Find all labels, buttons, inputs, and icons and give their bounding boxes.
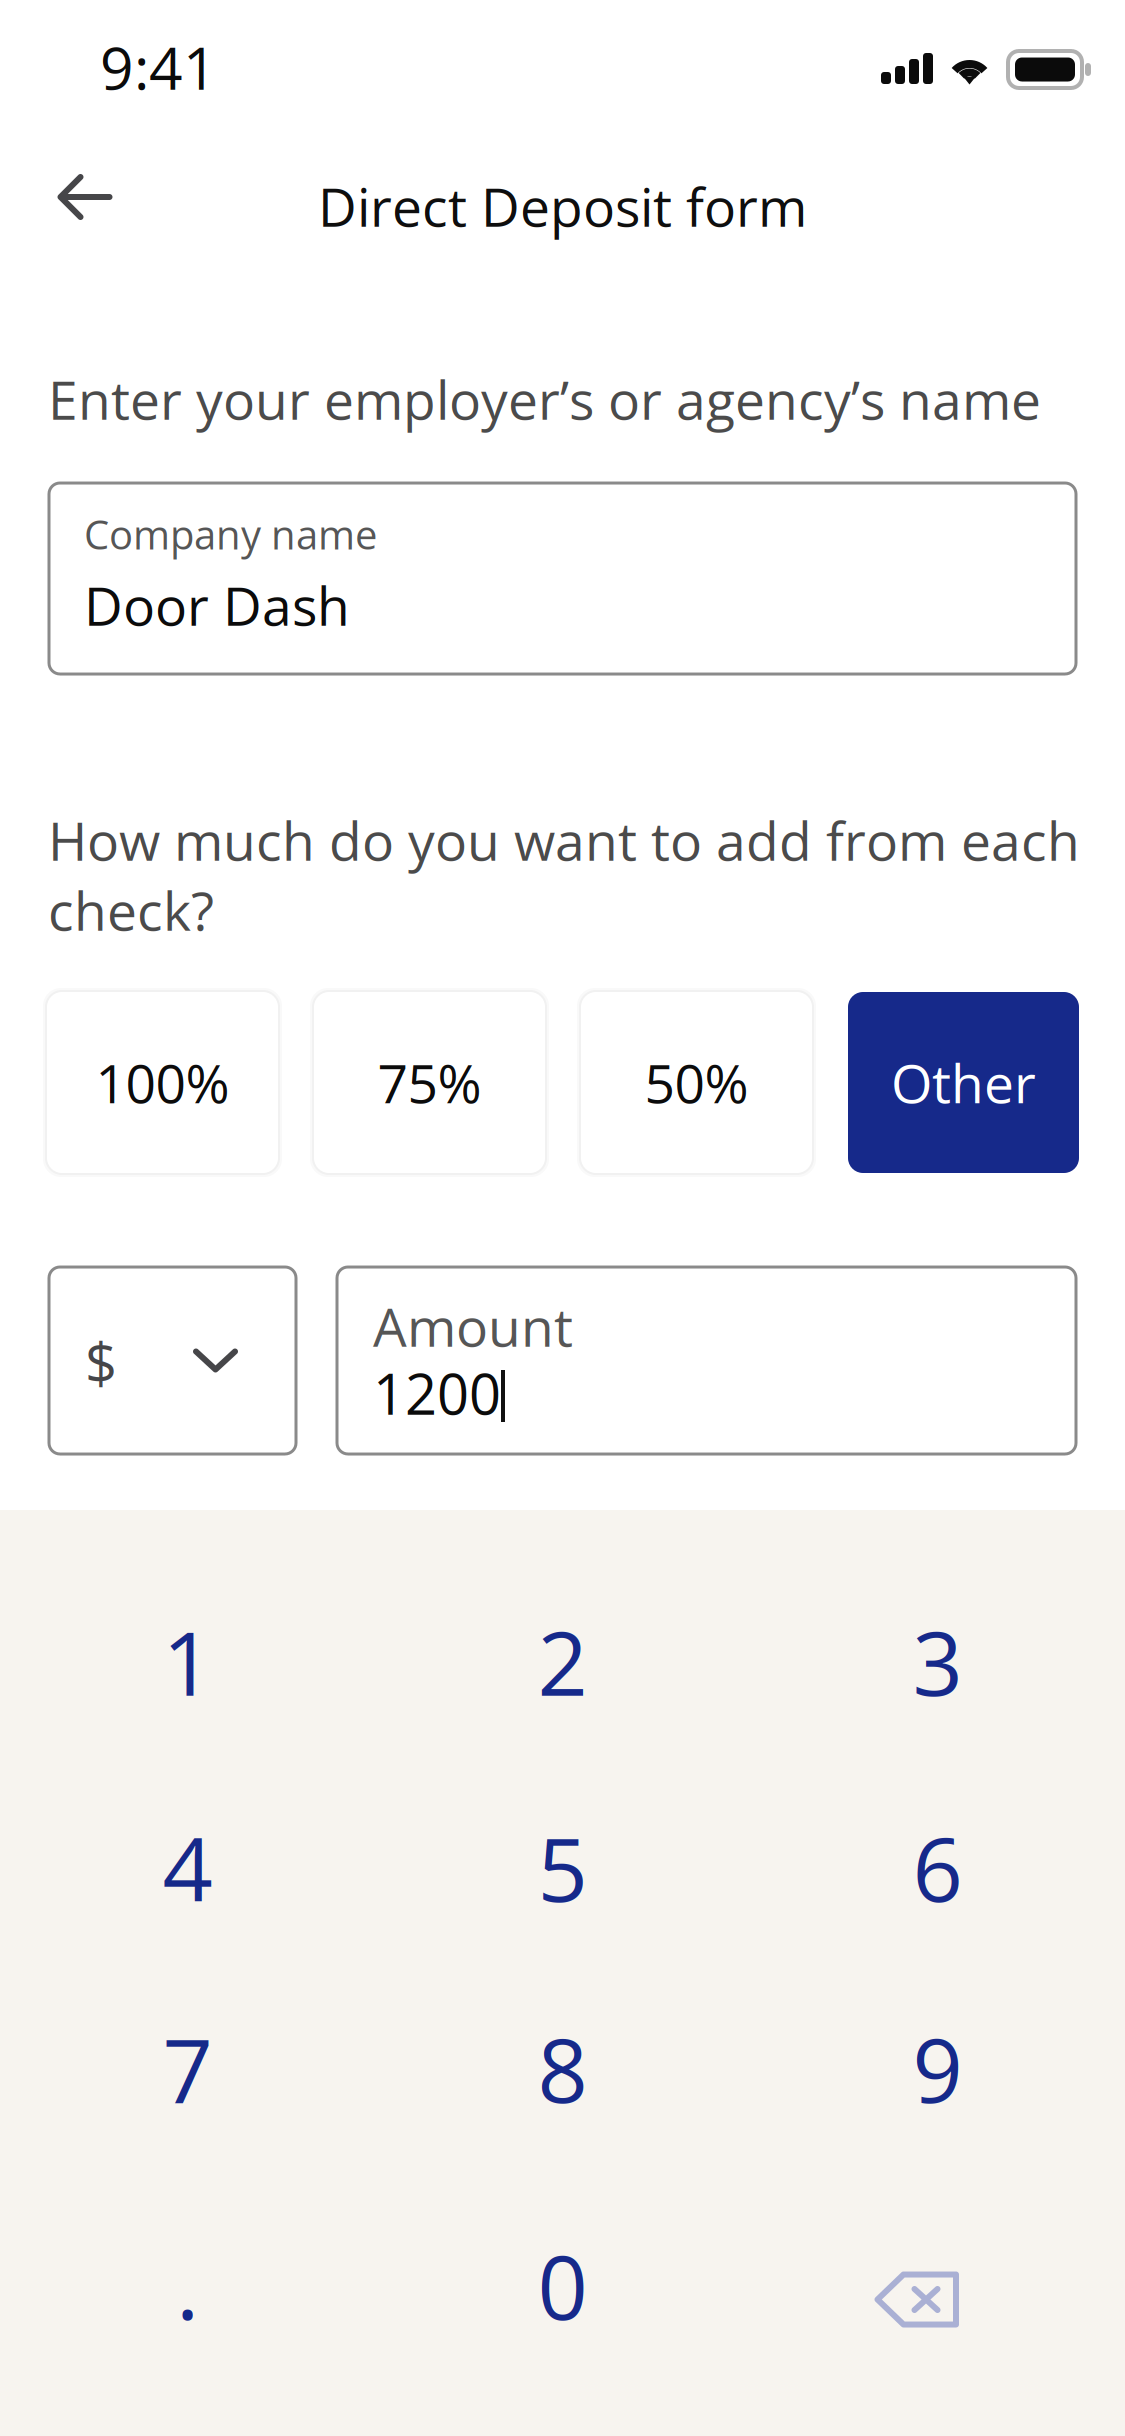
staticText: Company name	[84, 507, 377, 561]
staticText: 9	[912, 2009, 962, 2128]
staticText: 3	[912, 1602, 962, 1721]
staticText: 1	[162, 1602, 212, 1721]
button[interactable]: Amount	[337, 1267, 1076, 1454]
button[interactable]: 4	[0, 1765, 375, 1970]
button[interactable]: 1	[0, 1559, 375, 1764]
button[interactable]: 9	[750, 1966, 1125, 2171]
staticText: 75%	[377, 1046, 481, 1119]
staticText: 1200	[373, 1355, 501, 1431]
button[interactable]: .	[0, 2183, 375, 2388]
staticText: 9:41	[100, 27, 217, 107]
button[interactable]: 3	[750, 1559, 1125, 1764]
staticText: How much do you want to add from each	[48, 804, 1080, 876]
staticText: 2	[537, 1602, 587, 1721]
staticText: 5	[537, 1808, 587, 1927]
staticText: 0	[537, 2226, 587, 2345]
staticText: check?	[48, 874, 214, 946]
button[interactable]: 6	[750, 1765, 1125, 1970]
staticText: 6	[912, 1808, 962, 1927]
button[interactable]: Delete	[750, 2183, 1125, 2388]
button[interactable]: Back	[20, 137, 150, 257]
button[interactable]: 5	[375, 1765, 750, 1970]
staticText: Enter your employer’s or agency’s name	[48, 363, 1041, 435]
staticText: 100%	[95, 1046, 229, 1119]
button[interactable]: 8	[375, 1966, 750, 2171]
staticText: 50%	[644, 1046, 748, 1119]
button[interactable]: Company name	[49, 483, 1076, 674]
button[interactable]: Currency	[49, 1267, 296, 1454]
button[interactable]: 2	[375, 1559, 750, 1764]
staticText: Direct Deposit form	[318, 170, 807, 242]
button[interactable]: 7	[0, 1966, 375, 2171]
staticText: .	[176, 2226, 199, 2345]
staticText: Door Dash	[84, 569, 350, 641]
staticText: 8	[537, 2009, 587, 2128]
staticText: Other	[891, 1046, 1036, 1119]
staticText: 7	[162, 2009, 212, 2128]
button[interactable]: 50%	[577, 988, 816, 1177]
staticText: $	[85, 1324, 117, 1401]
staticText: Amount	[373, 1290, 573, 1362]
button[interactable]: 100%	[43, 988, 282, 1177]
button[interactable]: 75%	[310, 988, 549, 1177]
button[interactable]: Other	[844, 988, 1083, 1177]
staticText: 4	[162, 1808, 212, 1927]
button[interactable]: 0	[375, 2183, 750, 2388]
